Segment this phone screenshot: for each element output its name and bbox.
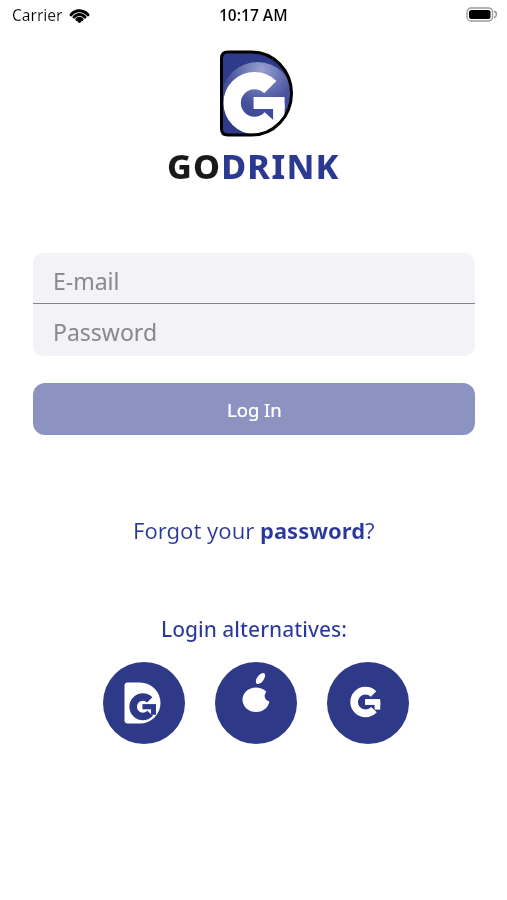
staticText: Carrier xyxy=(12,4,63,25)
button[interactable] xyxy=(327,662,409,744)
staticText: Log In xyxy=(227,397,282,422)
staticText: Forgot your password? xyxy=(133,515,375,545)
button[interactable]: Log In xyxy=(33,383,475,435)
button[interactable] xyxy=(103,662,185,744)
button[interactable]: Forgot your password? xyxy=(133,515,375,545)
staticText: Login alternatives: xyxy=(161,615,347,644)
button[interactable]: E-mail xyxy=(33,253,475,303)
staticText: Password xyxy=(53,316,158,347)
staticText: 10:17 AM xyxy=(219,4,288,25)
button[interactable]: Password xyxy=(33,304,475,356)
button[interactable] xyxy=(215,662,297,744)
staticText: E-mail xyxy=(53,265,120,296)
staticText: GODRINK xyxy=(167,143,340,189)
